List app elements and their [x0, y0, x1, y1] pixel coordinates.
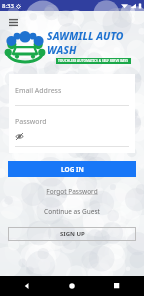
staticText: SAWMILL AUTO WASH: [47, 29, 140, 57]
button[interactable]: Home: [65, 279, 79, 293]
button[interactable]: Menu: [6, 15, 20, 29]
button[interactable]: Forgot Password: [40, 186, 104, 197]
staticText: TOUCHLESS AUTOMATICS & SELF SERVE BAYS: [58, 59, 129, 63]
button[interactable]: Back: [20, 279, 34, 293]
button[interactable]: Show password: [15, 131, 26, 142]
staticText: Forgot Password: [46, 187, 98, 196]
staticText: SIGN UP: [60, 230, 85, 238]
staticText: Password: [15, 117, 47, 127]
button[interactable]: SIGN UP: [8, 227, 136, 241]
staticText: LOG IN: [61, 165, 84, 174]
staticText: 8:33: [2, 2, 14, 10]
staticText: Continue as Guest: [44, 207, 100, 216]
button[interactable]: Continue as Guest: [38, 206, 106, 217]
staticText: Email Address: [15, 86, 62, 96]
button[interactable]: LOG IN: [8, 161, 136, 177]
button[interactable]: Recents: [110, 279, 124, 293]
